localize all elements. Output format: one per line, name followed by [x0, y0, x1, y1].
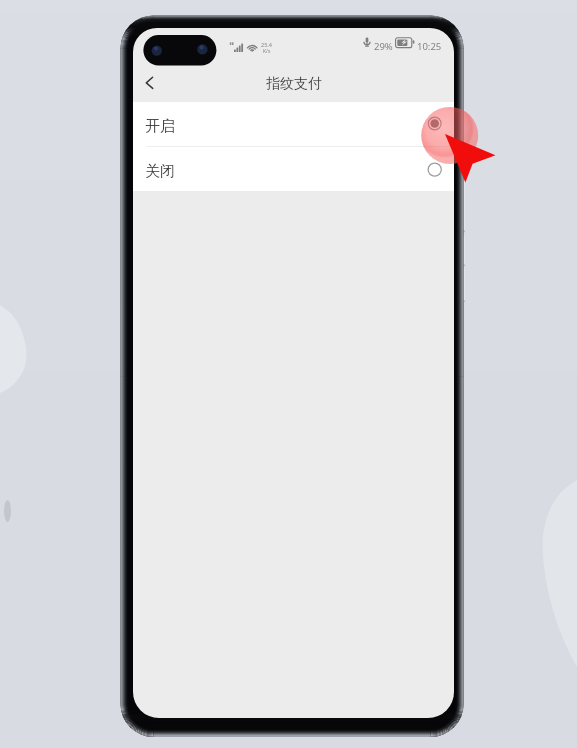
staticText: 10:25	[417, 40, 442, 53]
staticText: 29%	[374, 40, 393, 53]
staticText: 关闭	[145, 162, 175, 181]
button[interactable]: 关闭	[133, 147, 454, 191]
button[interactable]: 开启	[133, 102, 454, 146]
staticText: 开启	[145, 117, 175, 136]
button[interactable]: Back	[134, 66, 170, 102]
staticText: 25.4	[261, 41, 272, 48]
staticText: 指纹支付	[266, 75, 322, 93]
staticText: K/s	[263, 48, 271, 55]
